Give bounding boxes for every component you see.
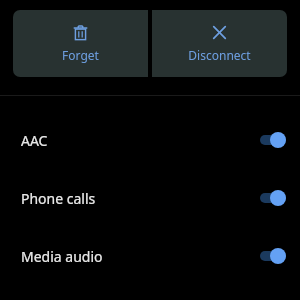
button[interactable]: Toggle xyxy=(260,190,286,206)
button[interactable]: Media audio xyxy=(0,227,300,285)
button[interactable]: Toggle xyxy=(260,132,286,148)
button[interactable]: Disconnect xyxy=(152,10,287,77)
button[interactable]: Toggle xyxy=(260,248,286,264)
staticText: Forget xyxy=(62,47,99,63)
button[interactable]: Phone calls xyxy=(0,169,300,227)
staticText: Media audio xyxy=(21,247,260,266)
button[interactable]: Forget xyxy=(13,10,148,77)
button[interactable]: AAC xyxy=(0,111,300,169)
staticText: Phone calls xyxy=(21,189,260,208)
staticText: Disconnect xyxy=(188,47,251,63)
staticText: AAC xyxy=(21,131,260,150)
